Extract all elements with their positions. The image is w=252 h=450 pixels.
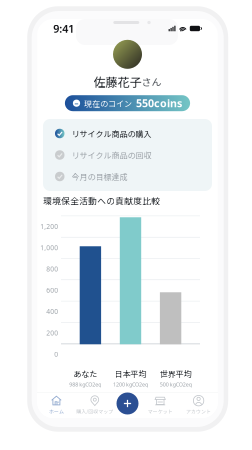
staticText: 550coins xyxy=(136,96,182,110)
staticText: リサイクル商品の回収 xyxy=(71,149,151,161)
staticText: ホーム xyxy=(49,408,64,415)
staticText: 800 xyxy=(46,264,58,273)
staticText: 現在のコイン xyxy=(84,97,132,109)
staticText: 世界平均 xyxy=(160,368,192,379)
staticText: 9:41 xyxy=(53,21,74,36)
staticText: 1,200 xyxy=(40,222,58,231)
staticText: 今月の目標達成 xyxy=(71,171,127,182)
button[interactable]: アカウント xyxy=(179,392,218,418)
button[interactable]: 現在のコイン xyxy=(65,95,190,111)
button[interactable]: ホーム xyxy=(37,392,76,418)
staticText: 日本平均 xyxy=(114,368,146,379)
staticText: マーケット xyxy=(148,408,173,415)
staticText: 600 xyxy=(46,286,58,295)
staticText: アカウント xyxy=(186,408,211,415)
staticText: 0 xyxy=(54,350,58,359)
staticText: 1,000 xyxy=(40,243,58,252)
staticText: 400 xyxy=(46,307,58,316)
staticText: 500 kgCO2eq xyxy=(160,381,192,388)
button[interactable]: 購入/回収マップ xyxy=(76,392,114,418)
staticText: 環境保全活動への貢献度比較 xyxy=(43,194,160,207)
staticText: 購入/回収マップ xyxy=(76,408,113,415)
button[interactable]: マーケット xyxy=(141,392,179,418)
staticText: 佐藤花子 xyxy=(93,73,141,90)
button[interactable]: 新規作成 xyxy=(114,390,140,416)
staticText: 1200 kgCO2eq xyxy=(113,381,148,388)
staticText: リサイクル商品の購入 xyxy=(71,128,151,139)
staticText: 988 kgCO2eq xyxy=(69,381,101,388)
staticText: さん xyxy=(141,74,161,89)
staticText: 200 xyxy=(46,328,58,337)
staticText: あなた xyxy=(73,368,97,379)
